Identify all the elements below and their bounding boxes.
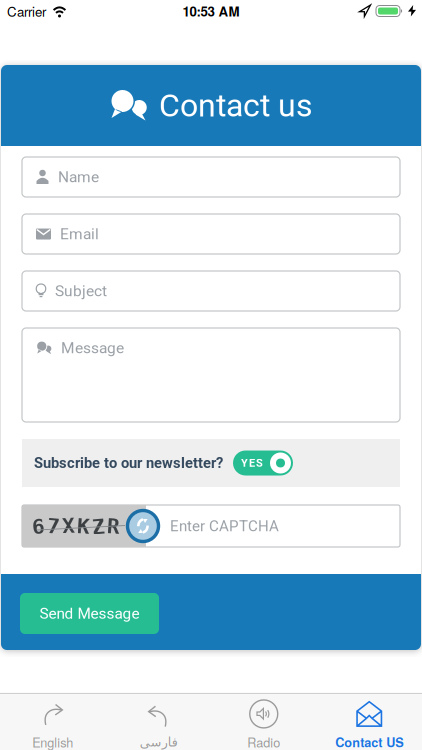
button[interactable]: Send Message <box>20 593 159 634</box>
staticText: Radio <box>247 733 280 750</box>
staticText: فارسی <box>139 735 177 749</box>
staticText: 6 <box>32 514 45 539</box>
staticText: X <box>62 513 75 538</box>
button[interactable]: Subscribe toggle YES <box>233 450 293 475</box>
button[interactable]: فارسی <box>105 702 211 749</box>
button[interactable]: English <box>0 700 105 750</box>
staticText: R <box>107 514 120 538</box>
staticText: Email <box>60 225 99 243</box>
staticText: Subject <box>55 282 107 300</box>
button[interactable]: Refresh CAPTCHA <box>127 510 158 541</box>
staticText: Message <box>61 339 124 357</box>
staticText: Contact us <box>159 87 313 124</box>
button[interactable]: Radio <box>211 700 316 750</box>
staticText: Subscribe to our newsletter? <box>34 454 223 472</box>
staticText: YES <box>241 457 263 469</box>
button[interactable]: Name <box>22 157 400 197</box>
staticText: Carrier <box>7 1 46 21</box>
staticText: English <box>32 733 73 750</box>
staticText: K <box>77 514 90 538</box>
staticText: 7 <box>47 514 60 538</box>
staticText: Enter CAPTCHA <box>170 517 279 535</box>
button[interactable]: Enter CAPTCHA <box>22 505 400 547</box>
button[interactable]: Subject <box>22 271 400 311</box>
button[interactable]: Message <box>22 328 400 422</box>
staticText: Name <box>58 168 99 186</box>
staticText: Send Message <box>39 604 139 622</box>
staticText: Contact US <box>335 733 403 750</box>
staticText: 10:53 AM <box>182 1 239 21</box>
button[interactable]: Email <box>22 214 400 254</box>
staticText: Z <box>92 514 105 539</box>
button[interactable]: Contact US <box>316 700 422 750</box>
